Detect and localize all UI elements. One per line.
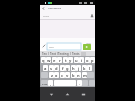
staticText: Komu xyxy=(43,15,50,18)
staticText: u xyxy=(75,58,78,63)
staticText: p xyxy=(91,58,94,63)
staticText: o xyxy=(86,58,89,63)
button[interactable]: Back xyxy=(47,90,56,99)
staticText: c xyxy=(61,73,64,78)
button[interactable]: Send xyxy=(83,44,91,50)
staticText: i xyxy=(81,58,83,63)
button[interactable]: p xyxy=(90,57,95,63)
staticText: b xyxy=(72,73,75,78)
staticText: s xyxy=(50,66,53,71)
staticText: d xyxy=(55,66,58,71)
button[interactable]: k xyxy=(82,65,87,71)
button[interactable]: d xyxy=(54,65,59,71)
staticText: f xyxy=(62,66,64,71)
staticText: g xyxy=(66,66,69,71)
staticText: , xyxy=(50,81,52,86)
button[interactable]: y xyxy=(68,57,73,63)
button[interactable]: h xyxy=(71,65,76,71)
staticText: Texting xyxy=(58,52,69,56)
button[interactable]: v xyxy=(65,72,70,78)
staticText: a xyxy=(44,66,47,71)
button[interactable]: n xyxy=(76,72,81,78)
button[interactable]: b xyxy=(71,72,76,78)
staticText: t xyxy=(65,58,67,63)
button[interactable]: e xyxy=(52,57,57,63)
button[interactable]: a xyxy=(43,65,48,71)
staticText: j xyxy=(78,66,80,71)
button[interactable]: t xyxy=(63,57,68,63)
button[interactable]: l xyxy=(87,65,92,71)
button[interactable]: Text xyxy=(47,51,58,56)
staticText: Texts xyxy=(72,52,80,56)
staticText: l xyxy=(89,66,91,71)
staticText: w xyxy=(47,58,51,63)
staticText: z xyxy=(51,73,53,78)
button[interactable]: . xyxy=(77,80,82,86)
button[interactable]: o xyxy=(85,57,90,63)
staticText: y xyxy=(69,58,72,63)
button[interactable]: i xyxy=(79,57,84,63)
button[interactable]: s xyxy=(49,65,54,71)
staticText: h xyxy=(72,66,75,71)
staticText: ?123 xyxy=(42,82,48,85)
button[interactable]: Tex xyxy=(39,51,50,56)
button[interactable]: Add contact xyxy=(88,12,95,20)
staticText: x xyxy=(55,73,58,78)
button[interactable]: x xyxy=(54,72,59,78)
staticText: 140/1 xyxy=(86,42,92,45)
staticText: q xyxy=(42,58,45,63)
button[interactable]: g xyxy=(65,65,70,71)
staticText: Text xyxy=(50,52,56,56)
button[interactable]: Attach xyxy=(41,43,47,49)
staticText: k xyxy=(83,66,86,71)
staticText: . xyxy=(79,81,81,86)
staticText: e xyxy=(53,58,56,63)
button[interactable]: c xyxy=(60,72,65,78)
button[interactable]: , xyxy=(48,80,53,86)
button[interactable]: Recents xyxy=(79,90,88,99)
staticText: Text xyxy=(49,45,54,48)
button[interactable]: Texting xyxy=(58,51,69,56)
button[interactable]: r xyxy=(57,57,62,63)
button[interactable]: Home xyxy=(63,90,72,99)
staticText: Nová zpráva xyxy=(48,7,61,10)
staticText: r xyxy=(59,58,61,63)
staticText: m xyxy=(83,73,87,78)
button[interactable]: f xyxy=(60,65,65,71)
staticText: Tex xyxy=(42,52,47,56)
button[interactable]: w xyxy=(46,57,51,63)
button[interactable]: j xyxy=(76,65,81,71)
button[interactable]: Texts xyxy=(70,51,81,56)
button[interactable]: Back xyxy=(40,5,47,12)
button[interactable]: Text xyxy=(47,43,81,50)
staticText: n xyxy=(77,73,80,78)
button[interactable]: m xyxy=(82,72,87,78)
button[interactable]: q xyxy=(41,57,46,63)
button[interactable]: z xyxy=(49,72,54,78)
staticText: v xyxy=(66,73,69,78)
button[interactable]: Symbols xyxy=(41,80,48,86)
button[interactable]: u xyxy=(74,57,79,63)
